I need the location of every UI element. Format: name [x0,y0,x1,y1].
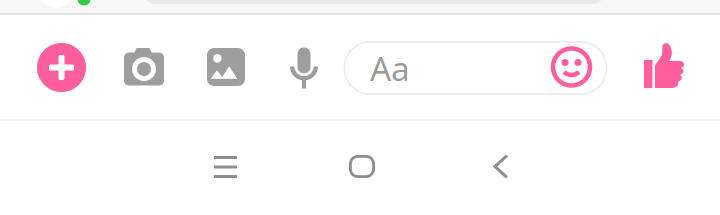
button[interactable]: Send a like [641,41,689,91]
button[interactable]: Home [338,142,386,190]
button[interactable]: Camera [116,37,172,93]
button[interactable]: Voice message [276,38,332,94]
button[interactable]: Choose an emoji [549,45,593,89]
button[interactable]: Back [477,142,525,190]
button[interactable]: More options [33,39,89,95]
staticText: Aa [370,46,410,90]
button[interactable]: Photos [198,39,254,95]
button[interactable]: Recent apps [201,143,249,191]
